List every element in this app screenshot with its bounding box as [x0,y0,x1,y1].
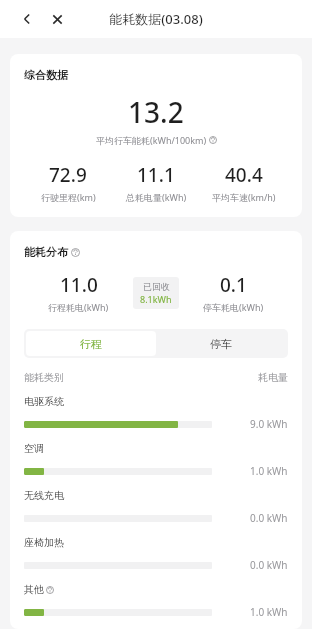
staticText: 其他 [24,583,44,596]
staticText: 能耗数据(03.08) [109,10,203,28]
staticText: 11.1 [137,162,175,188]
staticText: 耗电量 [258,371,288,384]
button[interactable]: 行程 [26,331,156,356]
staticText: 已回收 [143,281,170,292]
staticText: 1.0 kWh [250,605,288,619]
staticText: 能耗分布 [24,245,68,259]
staticText: 座椅加热 [24,536,64,549]
staticText: 9.0 kWh [250,417,288,431]
staticText: 空调 [24,442,44,455]
staticText: 0.0 kWh [250,558,288,572]
staticText: 72.9 [49,162,87,188]
staticText: 行程耗电(kWh) [48,301,109,313]
button[interactable]: Close [44,6,70,32]
staticText: 总耗电量(kWh) [126,191,187,203]
staticText: 综合数据 [24,68,68,82]
staticText: 1.0 kWh [250,464,288,478]
staticText: 平均车速(km/h) [212,191,276,203]
staticText: 平均行车能耗(kWh/100km) [96,134,207,146]
staticText: 8.1kWh [140,293,172,305]
staticText: 电驱系统 [24,395,64,408]
staticText: 行驶里程(km) [41,191,96,203]
staticText: 停车耗电(kWh) [203,301,264,313]
staticText: 行程 [80,337,102,351]
staticText: 11.0 [60,272,98,298]
button[interactable]: Back [14,6,40,32]
staticText: 0.1 [220,272,247,298]
staticText: 0.0 kWh [250,511,288,525]
staticText: 13.2 [128,93,184,131]
staticText: 停车 [210,337,232,351]
staticText: 无线充电 [24,489,64,502]
staticText: 40.4 [225,162,263,188]
staticText: 能耗类别 [24,371,64,384]
button[interactable]: 停车 [156,331,286,356]
